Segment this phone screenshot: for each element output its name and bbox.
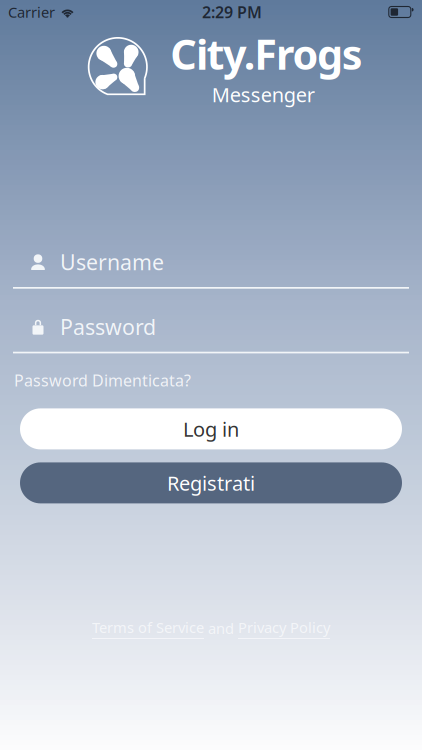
button[interactable]: Log in [20, 408, 402, 449]
staticText: 2:29 PM [202, 1, 262, 23]
staticText: Carrier [8, 2, 55, 22]
button[interactable]: Privacy Policy [238, 618, 330, 639]
staticText: Password Dimenticata? [14, 370, 191, 391]
button[interactable]: Terms of Service [92, 618, 204, 639]
button[interactable]: Registrati [20, 462, 402, 503]
staticText: and [204, 619, 238, 638]
button[interactable]: Password Dimenticata? [0, 367, 422, 393]
staticText: Privacy Policy [238, 618, 330, 637]
staticText: Terms of Service [92, 618, 204, 637]
staticText: Log in [183, 416, 239, 442]
staticText: Password [60, 312, 156, 341]
staticText: Registrati [167, 470, 255, 496]
staticText: Messenger [212, 81, 315, 108]
staticText: Username [60, 248, 164, 276]
staticText: City.Frogs [170, 26, 363, 81]
